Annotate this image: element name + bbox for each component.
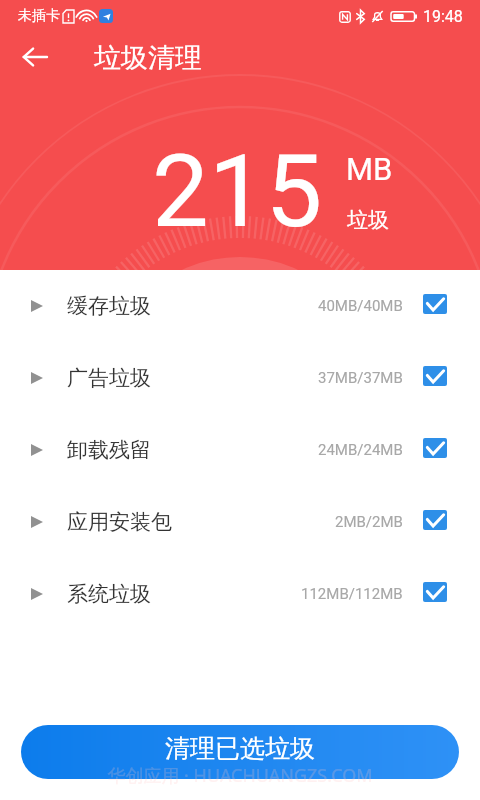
button[interactable]: Selected [423, 294, 447, 314]
staticText: 垃圾 [347, 207, 389, 233]
button[interactable]: Selected [423, 582, 447, 602]
staticText: MB [346, 151, 393, 187]
staticText: 19:48 [423, 7, 463, 26]
staticText: 系统垃圾 [67, 581, 151, 607]
staticText: 未插卡 [18, 7, 60, 25]
button[interactable]: Selected [423, 510, 447, 530]
staticText: 40MB/40MB [318, 297, 403, 315]
staticText: 2MB/2MB [335, 513, 403, 531]
staticText: 卸载残留 [67, 437, 151, 463]
staticText: 垃圾清理 [94, 41, 202, 75]
staticText: 37MB/37MB [318, 369, 403, 387]
button[interactable]: Back [12, 34, 58, 80]
staticText: 24MB/24MB [318, 441, 403, 459]
button[interactable]: 广告垃圾 [0, 342, 480, 414]
staticText: 广告垃圾 [67, 365, 151, 391]
button[interactable]: 清理已选垃圾 [21, 725, 459, 779]
staticText: 清理已选垃圾 [165, 733, 315, 764]
button[interactable]: Selected [423, 438, 447, 458]
staticText: 应用安装包 [67, 509, 172, 535]
staticText: 112MB/112MB [301, 585, 403, 603]
staticText: 缓存垃圾 [67, 293, 151, 319]
button[interactable]: Selected [423, 366, 447, 386]
button[interactable]: 系统垃圾 [0, 558, 480, 630]
button[interactable]: 应用安装包 [0, 486, 480, 558]
button[interactable]: 卸载残留 [0, 414, 480, 486]
staticText: 华创应用 · HUACHUANGZS.COM [107, 763, 373, 788]
button[interactable]: 缓存垃圾 [0, 270, 480, 342]
staticText: 215 [152, 132, 323, 250]
